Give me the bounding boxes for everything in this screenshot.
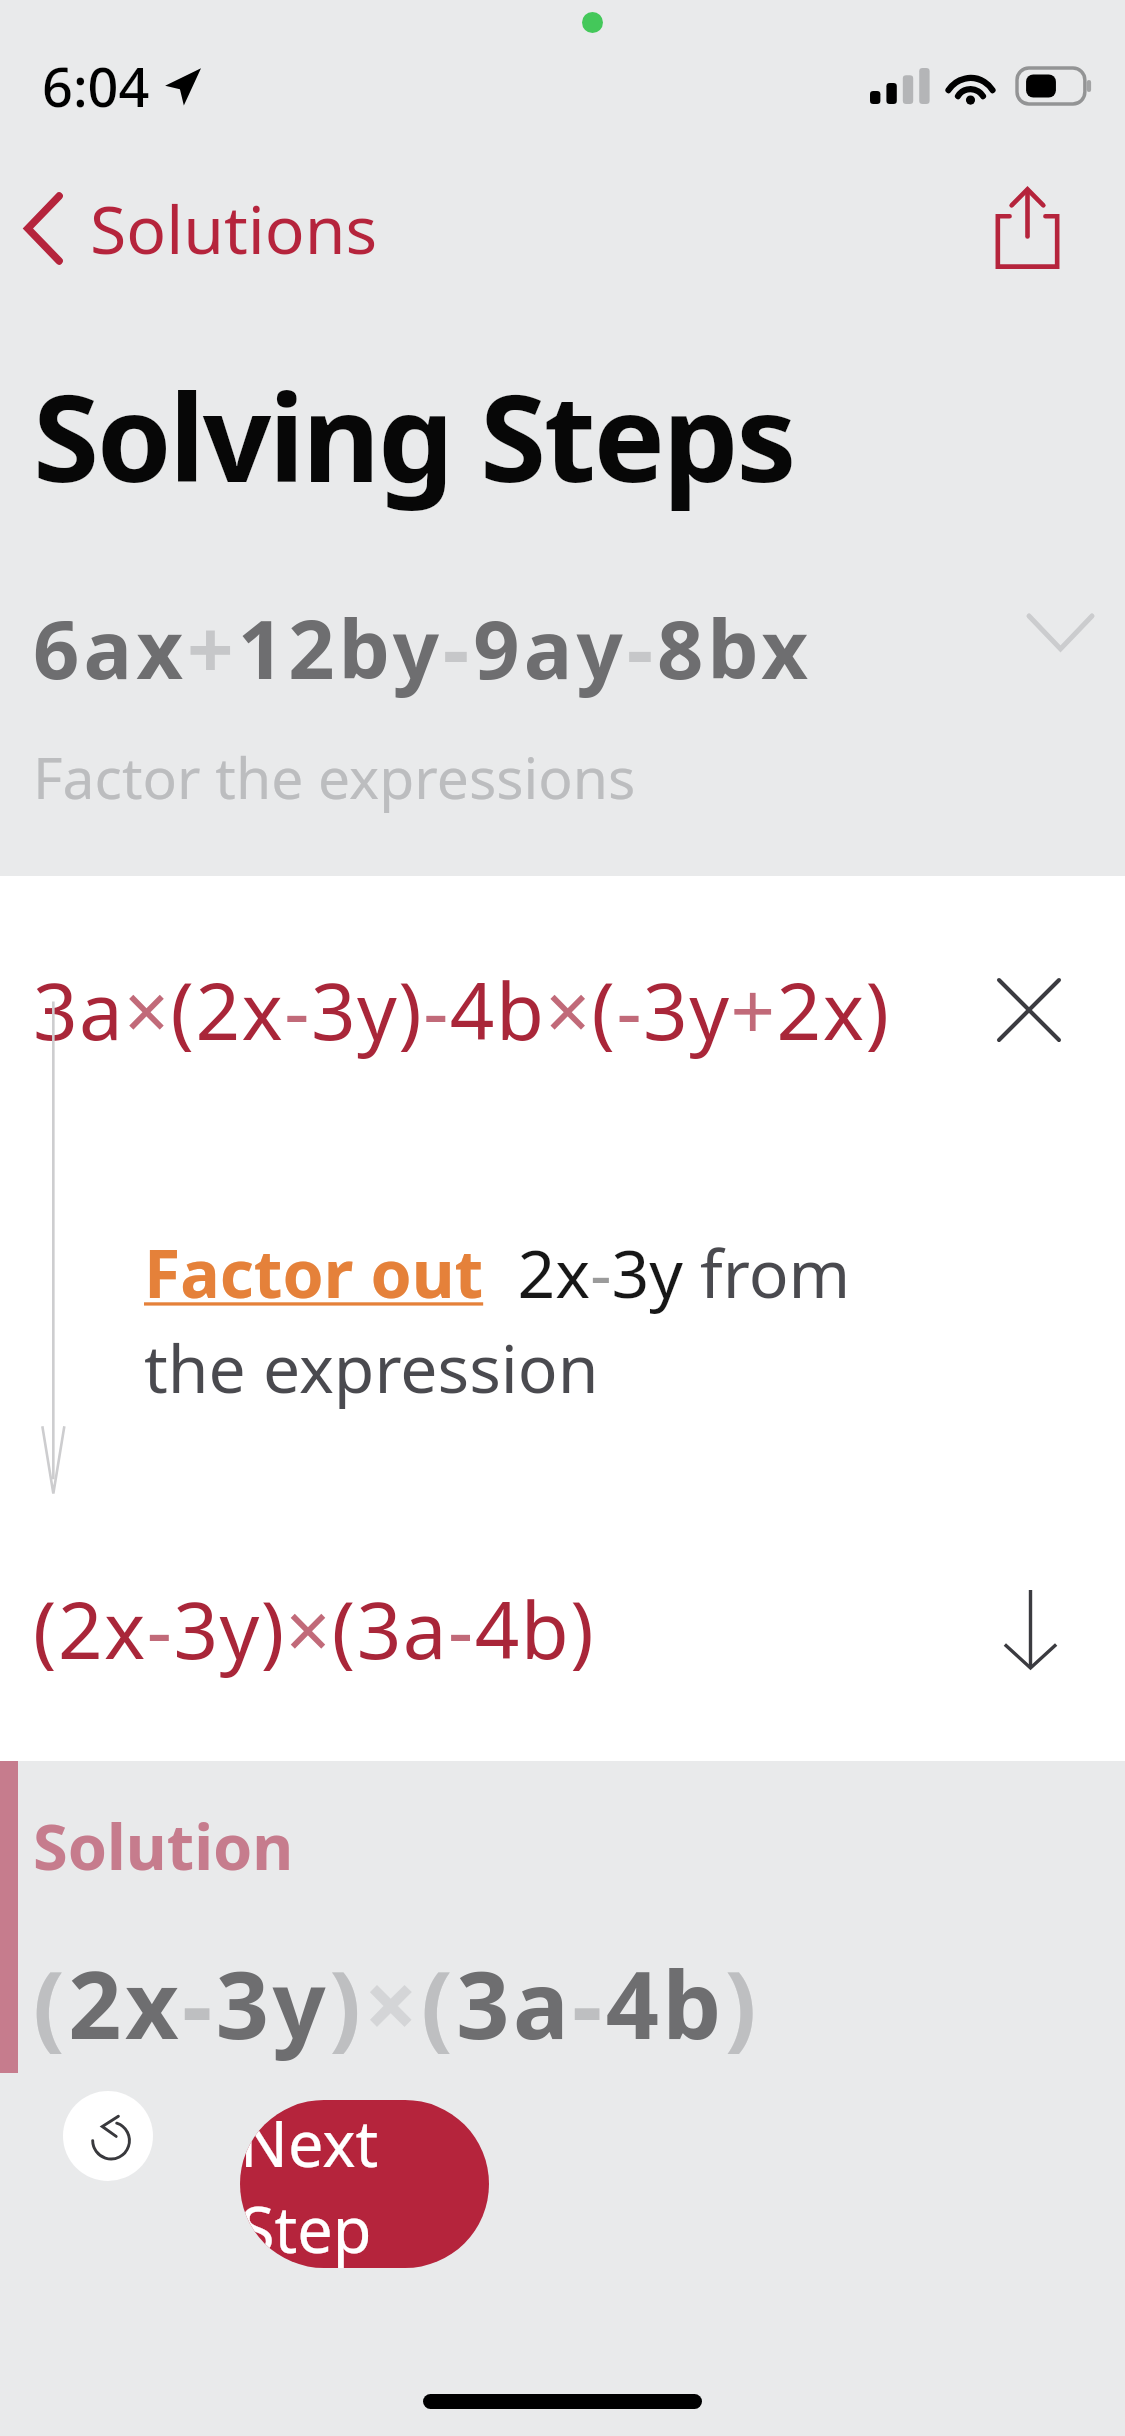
button[interactable]: Close step: [972, 953, 1086, 1067]
staticText: 6ax+12by-9ay-8bx: [33, 592, 813, 702]
staticText: 6:04: [42, 49, 150, 123]
button[interactable]: Solutions: [3, 162, 399, 294]
button[interactable]: Next: [975, 1563, 1086, 1695]
staticText: Factor out 2x-3y from the expression: [144, 1227, 909, 1413]
button[interactable]: Undo: [63, 2091, 153, 2181]
button[interactable]: Share: [972, 165, 1083, 291]
staticText: Solutions: [90, 183, 378, 273]
staticText: Solution: [33, 1803, 294, 1889]
staticText: 3a×(2x-3y)-4b×(-3y+2x): [33, 957, 891, 1063]
staticText: (2x-3y)×(3a-4b): [33, 1576, 596, 1682]
staticText: Factor the expressions: [33, 738, 636, 816]
staticText: Solving Steps: [33, 354, 795, 517]
button[interactable]: Collapse step: [996, 583, 1125, 682]
button[interactable]: Next Step: [240, 2100, 489, 2268]
staticText: Next Step: [240, 2100, 489, 2268]
staticText: (2x-3y)×(3a-4b): [33, 1940, 760, 2067]
